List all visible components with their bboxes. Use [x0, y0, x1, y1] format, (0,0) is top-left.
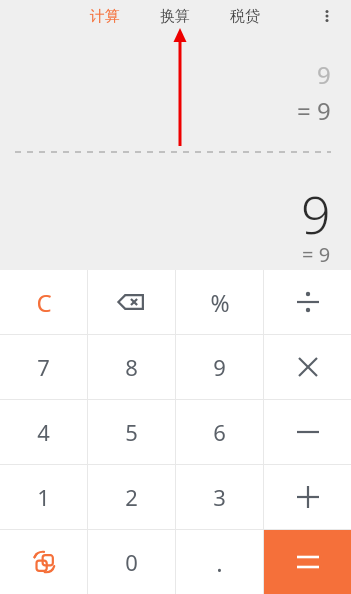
staticText: 0	[125, 547, 138, 577]
staticText: 5	[125, 417, 138, 447]
staticText: .	[216, 546, 223, 579]
button[interactable]: 3	[176, 465, 263, 529]
staticText: 换算	[160, 7, 190, 26]
button[interactable]: Unit converter	[0, 530, 87, 594]
staticText: 1	[37, 482, 50, 512]
staticText: 税贷	[230, 7, 260, 26]
button[interactable]: 2	[88, 465, 175, 529]
staticText: C	[36, 286, 52, 319]
button[interactable]: 9	[176, 335, 263, 399]
staticText: 9	[213, 352, 226, 382]
button[interactable]: 计算	[80, 3, 130, 30]
button[interactable]: 7	[0, 335, 87, 399]
staticText: = 9	[297, 94, 331, 127]
staticText: 4	[37, 417, 50, 447]
button[interactable]: .	[176, 530, 263, 594]
button[interactable]: Multiply	[264, 335, 351, 399]
button[interactable]: Backspace	[88, 270, 175, 334]
button[interactable]: C	[0, 270, 87, 334]
button[interactable]: 换算	[150, 3, 200, 30]
button[interactable]: 8	[88, 335, 175, 399]
staticText: = 9	[302, 241, 331, 268]
staticText: 计算	[90, 7, 120, 26]
button[interactable]: Equals	[264, 530, 351, 594]
staticText: 3	[213, 482, 226, 512]
staticText: 6	[213, 417, 226, 447]
button[interactable]: 6	[176, 400, 263, 464]
button[interactable]: Minus	[264, 400, 351, 464]
staticText: 2	[125, 482, 138, 512]
button[interactable]: 税贷	[220, 3, 270, 30]
button[interactable]: Divide	[264, 270, 351, 334]
button[interactable]: Plus	[264, 465, 351, 529]
staticText: 8	[125, 352, 138, 382]
button[interactable]: %	[176, 270, 263, 334]
button[interactable]: 0	[88, 530, 175, 594]
staticText: 7	[37, 352, 50, 382]
button[interactable]: 5	[88, 400, 175, 464]
staticText: %	[210, 287, 230, 318]
button[interactable]: 1	[0, 465, 87, 529]
staticText: 9	[317, 58, 331, 91]
staticText: 9	[301, 178, 331, 249]
button[interactable]: More options	[311, 0, 343, 32]
button[interactable]: 4	[0, 400, 87, 464]
